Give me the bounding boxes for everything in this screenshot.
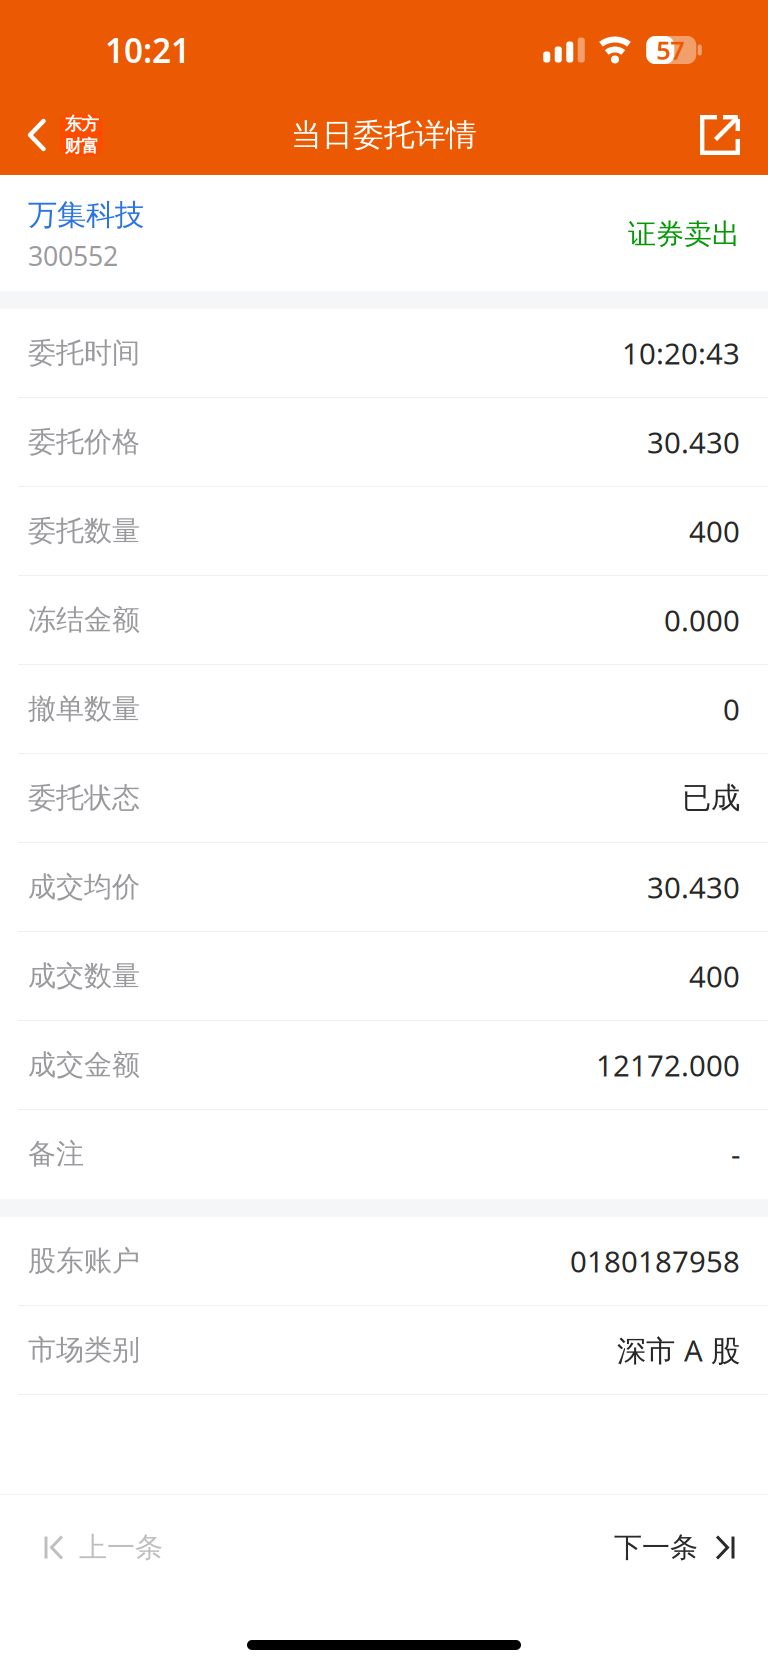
staticText: 成交均价 [28, 870, 140, 904]
button[interactable]: Share [676, 93, 768, 177]
staticText: 当日委托详情 [291, 116, 477, 154]
staticText: 万集科技 [28, 197, 144, 233]
staticText: 备注 [28, 1137, 84, 1171]
staticText: 30.430 [647, 422, 740, 461]
staticText: 57 [656, 33, 684, 67]
staticText: 0180187958 [570, 1241, 740, 1280]
staticText: 300552 [28, 238, 118, 273]
staticText: 10:21 [105, 28, 190, 72]
staticText: 深市 A 股 [617, 1330, 740, 1369]
staticText: 成交数量 [28, 959, 140, 993]
staticText: 财富 [64, 135, 98, 157]
button[interactable]: 上一条 [0, 1495, 193, 1600]
staticText: 股东账户 [28, 1244, 140, 1278]
staticText: 上一条 [79, 1530, 163, 1565]
staticText: 委托价格 [28, 425, 140, 459]
staticText: 0.000 [664, 600, 740, 639]
staticText: 委托数量 [28, 514, 140, 548]
staticText: 市场类别 [28, 1333, 140, 1367]
staticText: 撤单数量 [28, 692, 140, 726]
staticText: 成交金额 [28, 1048, 140, 1082]
button[interactable]: Back [0, 93, 115, 177]
staticText: 证券卖出 [628, 217, 740, 251]
staticText: 400 [689, 511, 740, 550]
staticText: 0 [723, 689, 740, 728]
staticText: 30.430 [647, 867, 740, 906]
staticText: 已成 [682, 780, 740, 816]
staticText: 12172.000 [596, 1045, 740, 1084]
staticText: - [731, 1134, 740, 1173]
staticText: 冻结金额 [28, 603, 140, 637]
staticText: 下一条 [614, 1530, 698, 1565]
staticText: 委托时间 [28, 336, 140, 370]
button[interactable]: 下一条 [584, 1495, 768, 1600]
staticText: 400 [689, 956, 740, 995]
staticText: 委托状态 [28, 781, 140, 815]
staticText: 10:20:43 [622, 333, 740, 372]
staticText: 东方 [64, 113, 98, 134]
